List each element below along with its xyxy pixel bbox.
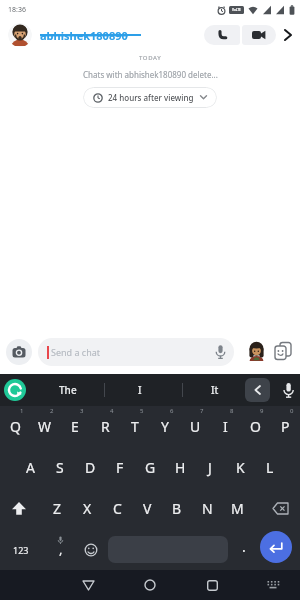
- button[interactable]: N: [192, 488, 222, 529]
- staticText: Chats with abhishek180890 delete...: [83, 69, 218, 80]
- button[interactable]: .: [231, 529, 257, 570]
- button[interactable]: S: [45, 447, 75, 488]
- button[interactable]: H: [165, 447, 195, 488]
- button[interactable]: G: [135, 447, 165, 488]
- button[interactable]: L: [255, 447, 285, 488]
- button[interactable]: [264, 488, 298, 529]
- staticText: W: [38, 417, 52, 436]
- button[interactable]: A: [15, 447, 45, 488]
- staticText: 5: [140, 407, 144, 415]
- button[interactable]: [242, 25, 276, 45]
- button[interactable]: [76, 529, 106, 570]
- button[interactable]: K: [225, 447, 255, 488]
- staticText: O: [250, 417, 261, 436]
- button[interactable]: [276, 378, 300, 402]
- button[interactable]: [280, 27, 296, 43]
- button[interactable]: [246, 341, 267, 362]
- staticText: P: [281, 417, 290, 436]
- staticText: L: [266, 458, 274, 477]
- staticText: U: [190, 417, 201, 436]
- button[interactable]: P: [270, 406, 300, 447]
- staticText: K: [236, 458, 245, 477]
- button[interactable]: The: [40, 374, 96, 406]
- button[interactable]: [200, 573, 224, 597]
- staticText: .: [242, 537, 246, 556]
- staticText: V: [143, 499, 152, 518]
- staticText: It: [211, 383, 219, 397]
- button[interactable]: [245, 378, 270, 402]
- button[interactable]: [6, 339, 32, 365]
- staticText: 0: [290, 407, 294, 415]
- button[interactable]: [138, 573, 162, 597]
- staticText: H: [175, 458, 186, 477]
- button[interactable]: U: [180, 406, 210, 447]
- staticText: T: [131, 417, 139, 436]
- button[interactable]: Send a chat: [38, 338, 234, 366]
- button[interactable]: [260, 531, 292, 563]
- staticText: J: [208, 458, 212, 477]
- staticText: 1: [20, 407, 24, 415]
- button[interactable]: V: [132, 488, 162, 529]
- staticText: S: [56, 458, 64, 477]
- button[interactable]: E: [60, 406, 90, 447]
- staticText: B: [172, 499, 182, 518]
- button[interactable]: J: [195, 447, 225, 488]
- button[interactable]: X: [72, 488, 102, 529]
- button[interactable]: [76, 573, 100, 597]
- staticText: 6: [170, 407, 174, 415]
- staticText: 8: [230, 407, 234, 415]
- staticText: 9: [260, 407, 264, 415]
- button[interactable]: I: [112, 374, 168, 406]
- staticText: Q: [10, 417, 21, 436]
- button[interactable]: [204, 25, 240, 45]
- staticText: N: [202, 499, 213, 518]
- button[interactable]: M: [222, 488, 252, 529]
- staticText: D: [85, 458, 96, 477]
- staticText: 4: [110, 407, 114, 415]
- staticText: ,: [59, 540, 63, 558]
- button[interactable]: B: [162, 488, 192, 529]
- button[interactable]: Z: [42, 488, 72, 529]
- staticText: G: [145, 458, 156, 477]
- staticText: R: [101, 417, 110, 436]
- button[interactable]: F: [105, 447, 135, 488]
- staticText: 24 hours after viewing: [108, 92, 194, 103]
- button[interactable]: [273, 341, 293, 361]
- button[interactable]: T: [120, 406, 150, 447]
- staticText: F: [116, 458, 124, 477]
- button[interactable]: 123: [4, 529, 38, 570]
- staticText: 123: [13, 544, 29, 556]
- staticText: C: [113, 499, 122, 518]
- staticText: 7: [200, 407, 204, 415]
- button[interactable]: Y: [150, 406, 180, 447]
- staticText: M: [231, 499, 244, 518]
- button[interactable]: W: [30, 406, 60, 447]
- button[interactable]: ,: [45, 529, 75, 570]
- staticText: Send a chat: [51, 346, 101, 358]
- button[interactable]: [262, 575, 284, 595]
- button[interactable]: R: [90, 406, 120, 447]
- button[interactable]: [8, 23, 32, 47]
- staticText: I: [138, 383, 142, 397]
- button[interactable]: It: [187, 374, 243, 406]
- staticText: abhishek180890: [40, 28, 128, 43]
- button[interactable]: Q: [0, 406, 30, 447]
- staticText: X: [83, 499, 92, 518]
- button[interactable]: O: [240, 406, 270, 447]
- button[interactable]: D: [75, 447, 105, 488]
- button[interactable]: [4, 379, 26, 401]
- staticText: A: [26, 458, 35, 477]
- button[interactable]: 24 hours after viewing: [83, 87, 217, 108]
- staticText: E: [71, 417, 79, 436]
- staticText: The: [59, 383, 77, 397]
- staticText: 2: [50, 407, 54, 415]
- staticText: VoLTE: [232, 8, 241, 12]
- staticText: Y: [161, 417, 169, 436]
- staticText: 3: [80, 407, 84, 415]
- staticText: TODAY: [139, 54, 162, 62]
- button[interactable]: [2, 488, 36, 529]
- button[interactable]: C: [102, 488, 132, 529]
- staticText: I: [223, 417, 228, 436]
- button[interactable]: I: [210, 406, 240, 447]
